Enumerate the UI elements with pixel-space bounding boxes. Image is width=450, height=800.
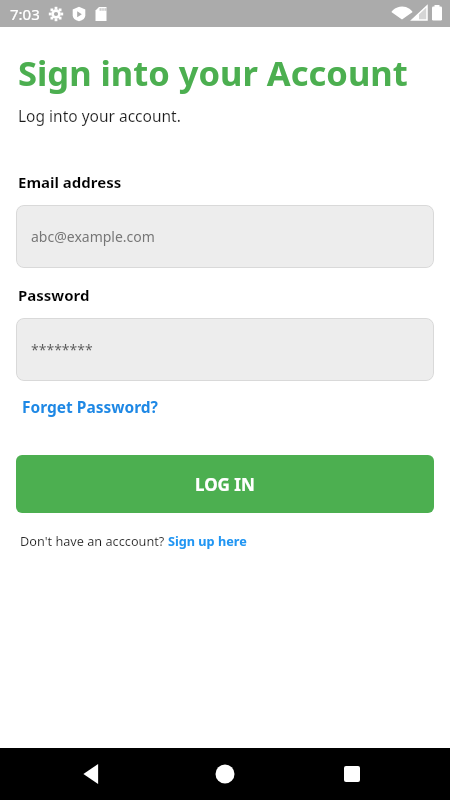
staticText: ********: [31, 340, 93, 359]
staticText: Don't have an acccount?: [20, 532, 168, 549]
staticText: Log into your account.: [18, 105, 181, 126]
staticText: Sign into your Account: [18, 49, 408, 96]
staticText: Password: [18, 285, 90, 305]
button[interactable]: [210, 759, 240, 789]
button[interactable]: Forget Password?: [16, 396, 159, 417]
button[interactable]: Sign up here: [168, 532, 247, 549]
button[interactable]: [78, 759, 108, 789]
staticText: 7:03: [10, 4, 40, 24]
button[interactable]: ********: [16, 318, 434, 381]
button[interactable]: [337, 759, 367, 789]
button[interactable]: abc@example.com: [16, 205, 434, 268]
staticText: LOG IN: [195, 473, 255, 496]
staticText: Email address: [18, 172, 122, 192]
staticText: Forget Password?: [22, 396, 159, 417]
staticText: abc@example.com: [31, 227, 155, 246]
staticText: Sign up here: [168, 532, 247, 549]
button[interactable]: LOG IN: [16, 455, 434, 513]
